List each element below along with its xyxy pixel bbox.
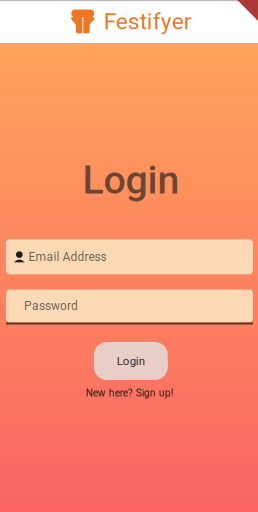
button[interactable]: New here? Sign up! [70, 385, 190, 401]
staticText: Email Address [29, 250, 107, 264]
staticText: Login [117, 354, 145, 368]
staticText: Festifyer [104, 8, 192, 35]
staticText: Password [24, 299, 78, 313]
staticText: New here? Sign up! [86, 387, 174, 399]
staticText: Login [82, 157, 179, 203]
button[interactable]: Login [94, 342, 168, 380]
